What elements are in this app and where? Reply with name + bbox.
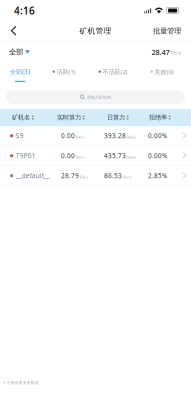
- staticText: TH/s: [75, 134, 84, 140]
- button[interactable]: 矿机名: [12, 109, 57, 126]
- staticText: 左滑查看更多数据: [7, 380, 39, 385]
- button[interactable]: 全部: [0, 43, 36, 61]
- staticText: 全部(3): [10, 67, 30, 76]
- staticText: TH/s: [170, 50, 181, 56]
- staticText: 日算力: [107, 114, 125, 121]
- staticText: 86.53: [104, 171, 122, 180]
- staticText: 4:16: [14, 4, 35, 17]
- staticText: 0.00: [61, 131, 75, 140]
- button[interactable]: 日算力: [107, 109, 149, 126]
- staticText: 拒绝率: [149, 114, 167, 121]
- staticText: 28.47: [152, 47, 170, 57]
- staticText: TH/s: [75, 154, 84, 160]
- staticText: 2.85%: [148, 171, 167, 180]
- button[interactable]: T9P01: [0, 146, 191, 166]
- button[interactable]: 请输入矿机名: [0, 84, 191, 109]
- button[interactable]: S9: [0, 126, 191, 146]
- staticText: 矿机管理: [79, 26, 111, 36]
- staticText: TH/s: [79, 174, 88, 180]
- button[interactable]: 批量管理: [143, 21, 191, 41]
- button[interactable]: 失效(0): [138, 62, 186, 84]
- staticText: 393.28: [104, 131, 126, 140]
- staticText: GH/s: [126, 134, 136, 140]
- button[interactable]: 实时算力: [57, 109, 107, 126]
- staticText: 28.79: [61, 171, 79, 180]
- staticText: S9: [16, 131, 24, 140]
- button[interactable]: 全部(3): [0, 62, 40, 84]
- button[interactable]: 活跃(1): [40, 62, 88, 84]
- staticText: T9P01: [16, 151, 36, 160]
- staticText: 活跃(1): [56, 68, 75, 76]
- staticText: __default__: [16, 171, 50, 180]
- staticText: 0.00: [61, 151, 75, 160]
- staticText: 0.00%: [148, 131, 167, 140]
- button[interactable]: 拒绝率: [149, 109, 191, 126]
- staticText: 实时算力: [57, 114, 81, 121]
- staticText: 不活跃(2): [102, 68, 127, 76]
- staticText: 矿机名: [12, 114, 30, 121]
- button[interactable]: 返回: [0, 21, 28, 41]
- staticText: 批量管理: [153, 26, 181, 36]
- button[interactable]: __default__: [0, 166, 191, 186]
- staticText: TH/s: [122, 174, 131, 180]
- staticText: 435.73: [104, 151, 126, 160]
- staticText: GH/s: [126, 154, 136, 160]
- staticText: 全部: [9, 47, 23, 57]
- button[interactable]: 不活跃(2): [88, 62, 138, 84]
- staticText: 失效(0): [154, 68, 173, 76]
- staticText: 请输入矿机名: [87, 95, 111, 100]
- staticText: 0.00%: [148, 151, 167, 160]
